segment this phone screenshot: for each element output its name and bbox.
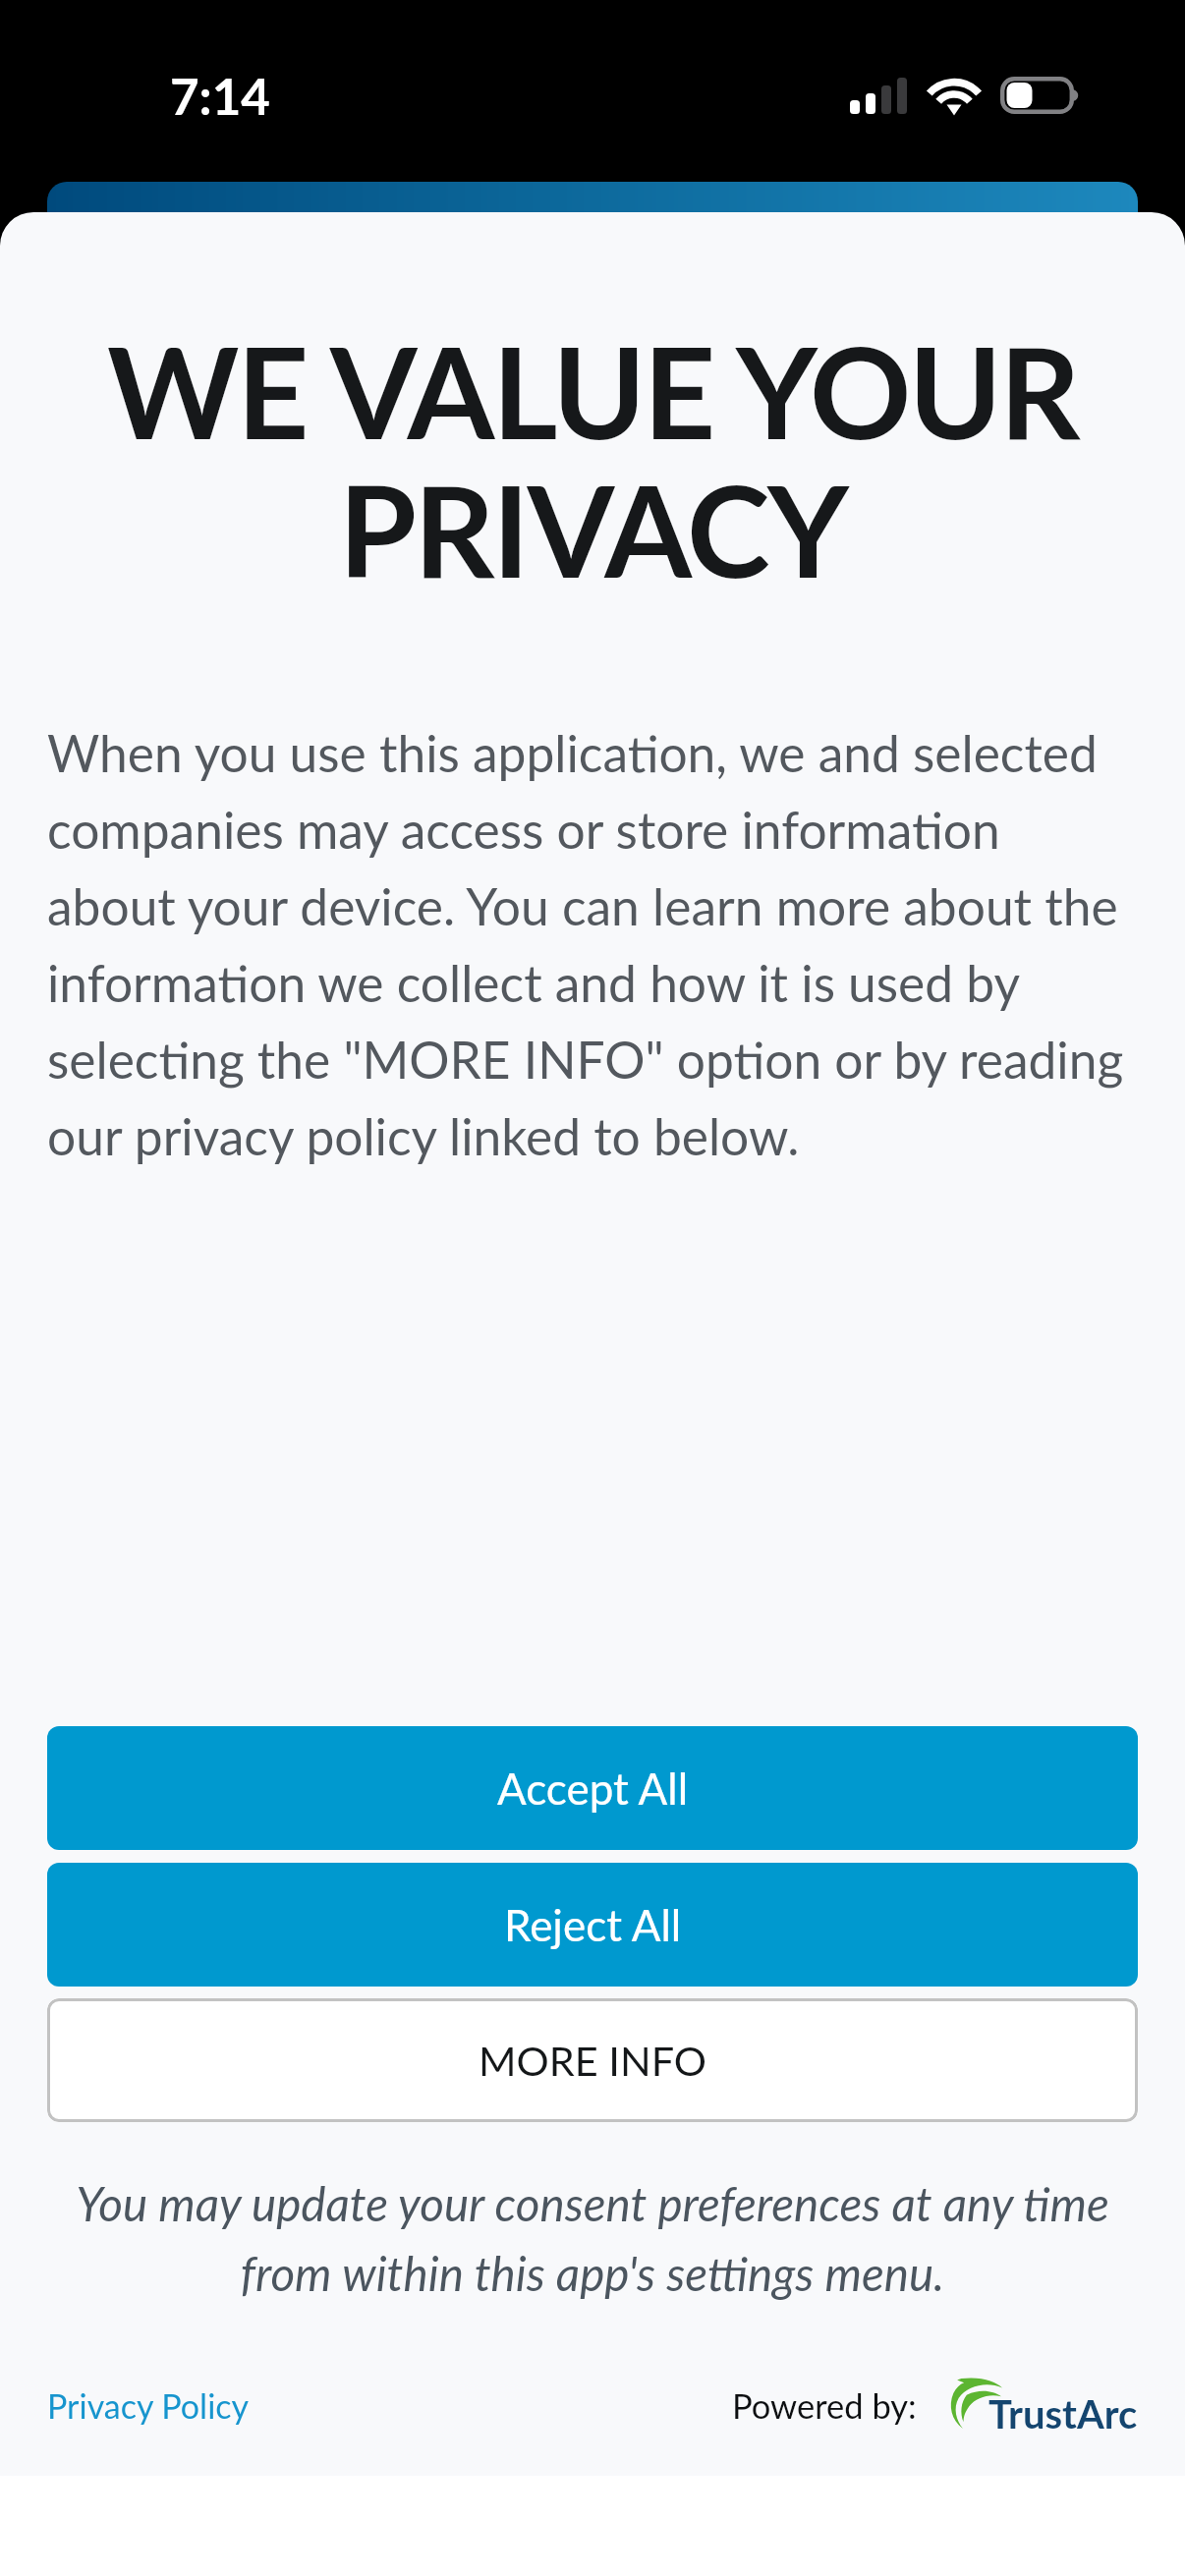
staticText: WE VALUE YOUR PRIVACY: [39, 315, 1146, 604]
staticText: 7:14: [170, 66, 270, 126]
other: Cellular signal: [850, 78, 907, 114]
button[interactable]: Privacy Policy: [47, 2385, 250, 2426]
staticText: Accept All: [497, 1763, 689, 1815]
staticText: When you use this application, we and se…: [47, 722, 1140, 1166]
staticText: TrustArc: [988, 2390, 1138, 2437]
button[interactable]: MORE INFO: [47, 1998, 1138, 2122]
other: Wi-Fi: [929, 78, 980, 115]
staticText: Powered by:: [732, 2385, 917, 2426]
staticText: MORE INFO: [479, 2036, 707, 2085]
staticText: You may update your consent preferences …: [47, 2175, 1138, 2302]
staticText: Reject All: [504, 1899, 682, 1951]
staticText: Privacy Policy: [47, 2385, 250, 2426]
button[interactable]: Accept All: [47, 1726, 1138, 1850]
other: Battery: [1000, 77, 1082, 114]
button[interactable]: Reject All: [47, 1863, 1138, 1987]
